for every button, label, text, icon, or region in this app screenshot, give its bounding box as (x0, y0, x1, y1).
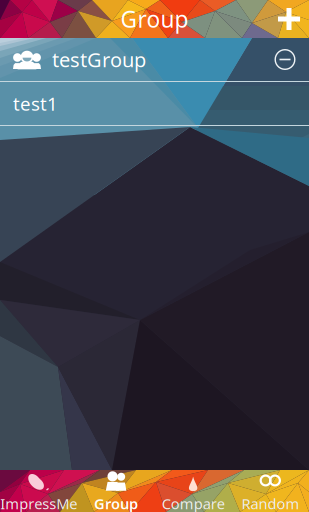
button[interactable]: Random (232, 470, 309, 512)
staticText: ImpressMe (0, 494, 77, 512)
staticText: Random (241, 494, 299, 512)
button[interactable]: Group (77, 470, 154, 512)
staticText: test1 (13, 91, 58, 116)
button[interactable]: Add (269, 0, 309, 38)
staticText: Group (94, 494, 138, 512)
staticText: Compare (162, 494, 225, 512)
staticText: testGroup (52, 46, 146, 73)
button[interactable]: test1 (0, 82, 309, 125)
button[interactable]: ImpressMe (0, 470, 77, 512)
staticText: Group (120, 4, 188, 34)
button[interactable]: testGroup (0, 38, 309, 81)
button[interactable]: Compare (154, 470, 232, 512)
